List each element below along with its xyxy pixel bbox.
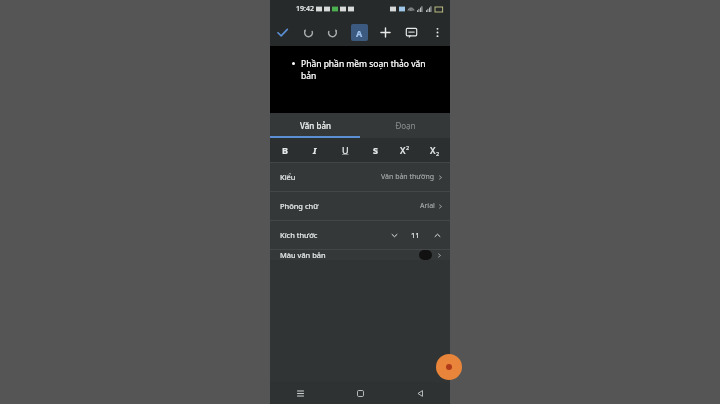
button[interactable]: Back [390,382,450,404]
staticText: 19:42 [296,4,314,14]
button[interactable]: Decrease size [387,228,401,242]
button[interactable]: Đoạn [360,113,450,138]
staticText: X [400,144,406,156]
button[interactable]: Comment [398,18,424,46]
button[interactable]: Increase size [430,228,444,242]
button[interactable]: Italic [300,138,330,162]
button[interactable]: Văn bản [270,113,360,138]
button[interactable]: More options [424,18,450,46]
button[interactable]: Home [330,382,390,404]
button[interactable]: Insert [372,18,398,46]
button[interactable]: Phông chữ [270,192,450,220]
button[interactable]: Accept [270,18,295,46]
button[interactable]: Kiểu [270,163,450,191]
staticText: Đoạn [395,120,416,131]
staticText: Phần phần mềm soạn thảo văn bản [301,58,434,82]
staticText: 11 [411,230,420,240]
staticText: Màu văn bản [280,250,326,260]
staticText: 2 [436,150,440,157]
button[interactable]: Redo [320,18,346,46]
staticText: U [342,144,349,156]
button[interactable]: Strikethrough [360,138,390,162]
staticText: Phông chữ [280,201,319,211]
staticText: X [430,144,436,156]
staticText: 2 [406,144,410,151]
button[interactable]: Subscript [420,138,450,162]
staticText: I [313,144,317,156]
button[interactable]: Undo [295,18,320,46]
button[interactable]: Text formatting [351,24,368,41]
staticText: S [373,144,378,156]
button[interactable]: New comment [436,354,462,380]
staticText: Văn bản [300,120,331,131]
button[interactable]: U [330,138,360,162]
staticText: B [282,144,288,156]
button[interactable]: Superscript [390,138,420,162]
staticText: Văn bản thường [381,172,435,182]
staticText: Arial [420,201,435,211]
staticText: Kích thước [280,230,318,240]
staticText: Kiểu [280,172,296,182]
button[interactable]: B [270,138,300,162]
staticText: A [356,27,363,39]
button[interactable]: Recent apps [270,382,330,404]
